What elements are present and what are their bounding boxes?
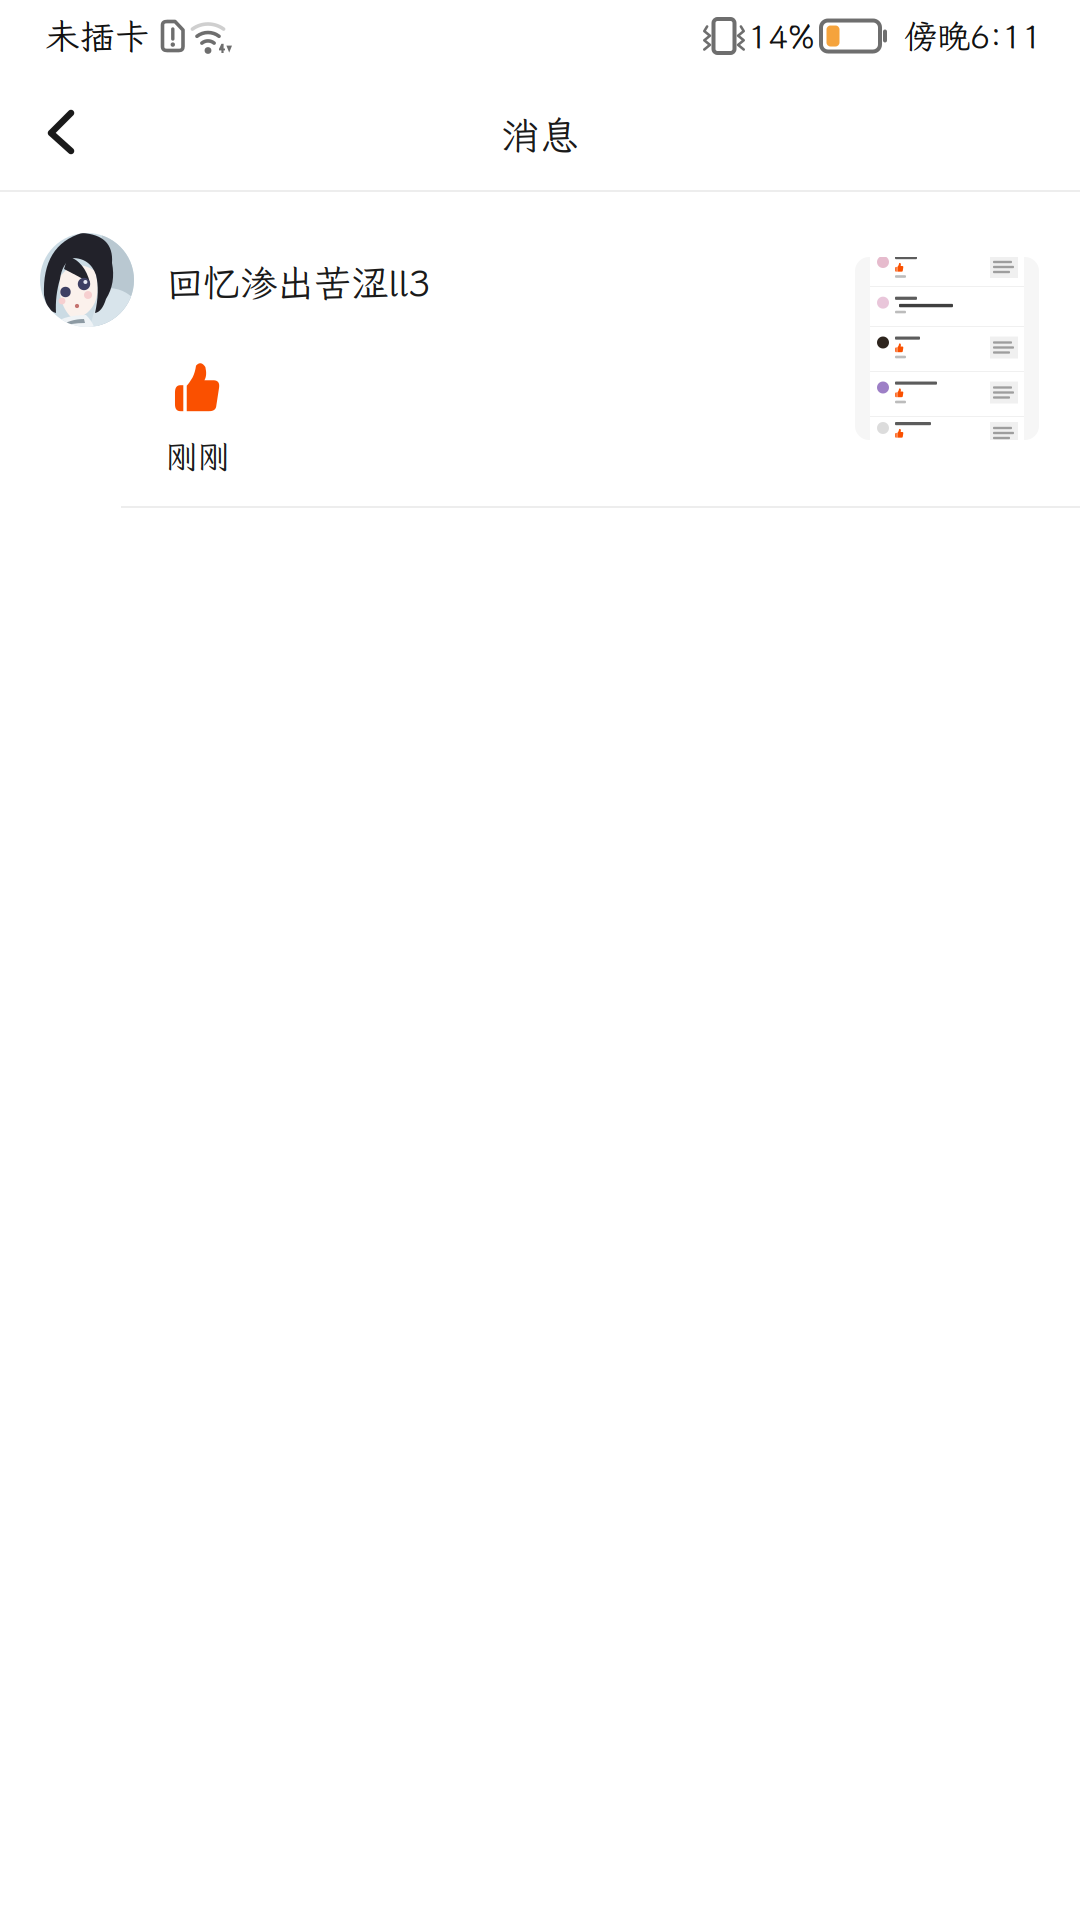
staticText: 回忆渗出苦涩ll3 [166,258,430,307]
staticText: 傍晚6:11 [904,14,1042,58]
button[interactable]: 返回 [24,87,100,191]
staticText: 刚刚 [166,435,230,477]
staticText: 消息 [501,109,579,160]
staticText: 14% [748,14,815,58]
button[interactable]: 回忆渗出苦涩ll3 [0,192,1080,508]
staticText: 未插卡 [45,13,150,59]
